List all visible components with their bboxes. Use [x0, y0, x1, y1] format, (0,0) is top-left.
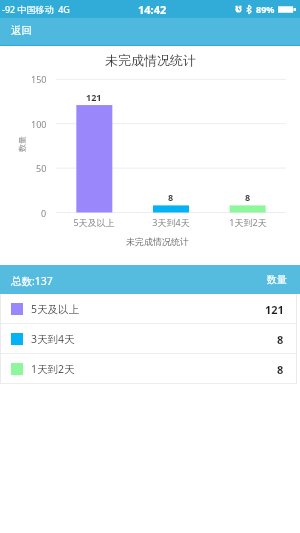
- staticText: 121: [86, 91, 102, 103]
- staticText: 150: [31, 73, 47, 85]
- staticText: 数量: [17, 136, 27, 152]
- button[interactable]: 3天到4天: [0, 324, 297, 354]
- staticText: 8: [277, 362, 284, 377]
- staticText: 89%: [256, 3, 275, 15]
- staticText: 3天到4天: [31, 332, 75, 346]
- staticText: 5天及以上: [31, 302, 80, 316]
- staticText: 返回: [11, 24, 32, 37]
- staticText: 未完成情况统计: [105, 52, 196, 68]
- button[interactable]: 1天到2天: [0, 354, 297, 384]
- staticText: 0: [41, 207, 47, 219]
- staticText: 总数:137: [11, 274, 53, 288]
- staticText: 3天到4天: [152, 216, 190, 228]
- staticText: 未完成情况统计: [126, 236, 189, 247]
- staticText: -92 中国移动 4G: [2, 3, 70, 15]
- staticText: 1天到2天: [31, 362, 75, 376]
- staticText: 1天到2天: [229, 216, 267, 228]
- staticText: 8: [277, 332, 284, 347]
- button[interactable]: 返回: [0, 20, 45, 45]
- staticText: 8: [168, 191, 174, 203]
- staticText: 5天及以上: [73, 216, 115, 228]
- staticText: 14:42: [138, 2, 167, 17]
- staticText: 121: [265, 302, 284, 317]
- staticText: 数量: [267, 273, 287, 286]
- staticText: 100: [31, 118, 47, 130]
- button[interactable]: 5天及以上: [0, 294, 297, 324]
- staticText: 8: [245, 191, 251, 203]
- staticText: 50: [36, 162, 47, 174]
